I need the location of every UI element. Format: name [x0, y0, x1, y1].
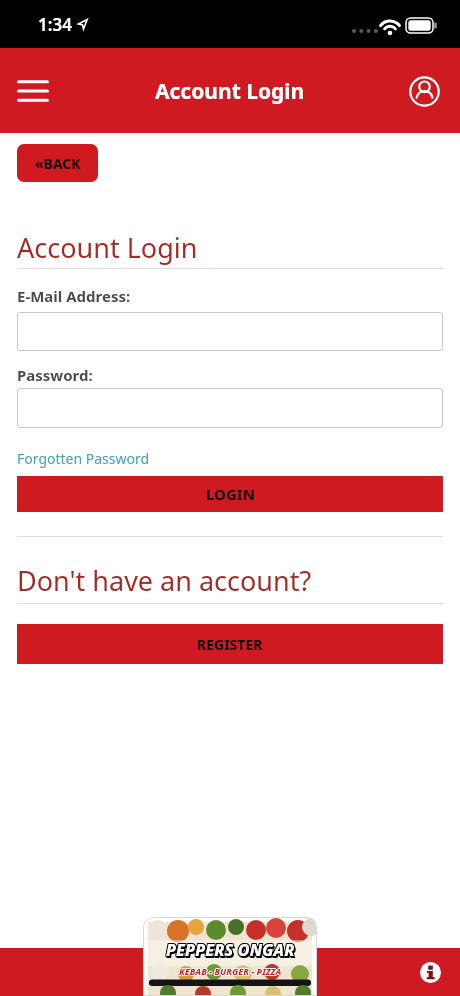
- staticText: LOGIN: [206, 484, 255, 504]
- staticText: PEPPERS ONGAR: [166, 939, 295, 961]
- staticText: KEBAB - BURGER - PIZZA: [179, 965, 282, 977]
- staticText: Account Login: [155, 77, 305, 106]
- button[interactable]: LOGIN: [17, 476, 443, 512]
- button[interactable]: Forgotten Password: [17, 449, 150, 468]
- button[interactable]: [405, 72, 443, 110]
- staticText: PEPPERS ONGAR: [167, 939, 296, 961]
- staticText: KEBAB - BURGER - PIZZA: [180, 965, 283, 977]
- staticText: PEPPERS ONGAR: [165, 938, 294, 960]
- staticText: PEPPERS ONGAR: [166, 938, 295, 960]
- button[interactable]: PEPPERS ONGAR: [143, 917, 317, 996]
- staticText: 1:34: [38, 13, 72, 36]
- staticText: Don't have an account?: [17, 562, 312, 599]
- button[interactable]: REGISTER: [17, 624, 443, 664]
- staticText: Password:: [17, 365, 93, 385]
- button[interactable]: [17, 388, 443, 428]
- staticText: PEPPERS ONGAR: [165, 940, 294, 962]
- staticText: KEBAB - BURGER - PIZZA: [178, 965, 281, 977]
- staticText: PEPPERS ONGAR: [167, 938, 296, 960]
- staticText: REGISTER: [197, 635, 263, 654]
- staticText: PEPPERS ONGAR: [166, 941, 295, 963]
- staticText: PEPPERS ONGAR: [167, 940, 296, 962]
- staticText: PEPPERS ONGAR: [165, 939, 294, 961]
- staticText: PEPPERS ONGAR: [166, 940, 295, 962]
- staticText: Account Login: [17, 229, 198, 266]
- staticText: E-Mail Address:: [17, 286, 131, 306]
- staticText: KEBAB - BURGER - PIZZA: [179, 966, 282, 978]
- button[interactable]: [10, 68, 56, 114]
- staticText: PEPPERS ONGAR: [168, 941, 297, 963]
- staticText: «BACK: [35, 154, 81, 173]
- button[interactable]: [420, 962, 441, 983]
- staticText: KEBAB - BURGER - PIZZA: [179, 964, 282, 976]
- button[interactable]: «BACK: [17, 144, 98, 182]
- button[interactable]: [17, 312, 443, 351]
